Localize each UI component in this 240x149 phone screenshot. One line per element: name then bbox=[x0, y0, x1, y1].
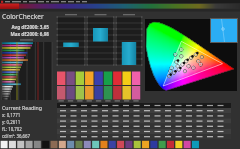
staticText: x: 0,1771 bbox=[2, 112, 21, 118]
staticText: y: 0,2611 bbox=[2, 119, 21, 125]
staticText: fL: 10,702 bbox=[2, 126, 22, 132]
staticText: ColorChecker bbox=[2, 12, 44, 21]
staticText: Max dE2000: 6,98 bbox=[0, 31, 49, 37]
staticText: cd/m²: 36,667 bbox=[2, 133, 31, 139]
staticText: Avg dE2000: 3,65 bbox=[0, 24, 49, 30]
staticText: Current Reading bbox=[2, 104, 43, 111]
